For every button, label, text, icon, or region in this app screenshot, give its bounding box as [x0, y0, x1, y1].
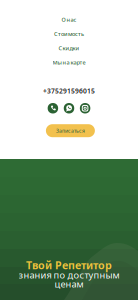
button[interactable]: Записаться	[46, 124, 95, 137]
staticText: ценам	[54, 278, 83, 290]
staticText: знания по доступным	[18, 269, 119, 281]
button[interactable]: WhatsApp	[64, 103, 74, 113]
button[interactable]: +375291596015	[0, 86, 138, 96]
staticText: +375291596015	[43, 86, 95, 96]
button[interactable]: О нас	[21, 12, 117, 27]
button[interactable]: Мы на карте	[21, 55, 117, 70]
staticText: Твой Репетитор	[26, 258, 112, 272]
staticText: Стоимость	[54, 30, 84, 38]
staticText: Записаться	[56, 127, 85, 134]
staticText: Мы на карте	[52, 59, 85, 66]
button[interactable]: Стоимость	[21, 27, 117, 41]
button[interactable]: Позвонить	[48, 103, 58, 113]
button[interactable]: Instagram	[80, 103, 90, 113]
button[interactable]: Скидки	[21, 41, 117, 55]
staticText: Скидки	[58, 44, 79, 52]
staticText: О нас	[61, 16, 76, 23]
